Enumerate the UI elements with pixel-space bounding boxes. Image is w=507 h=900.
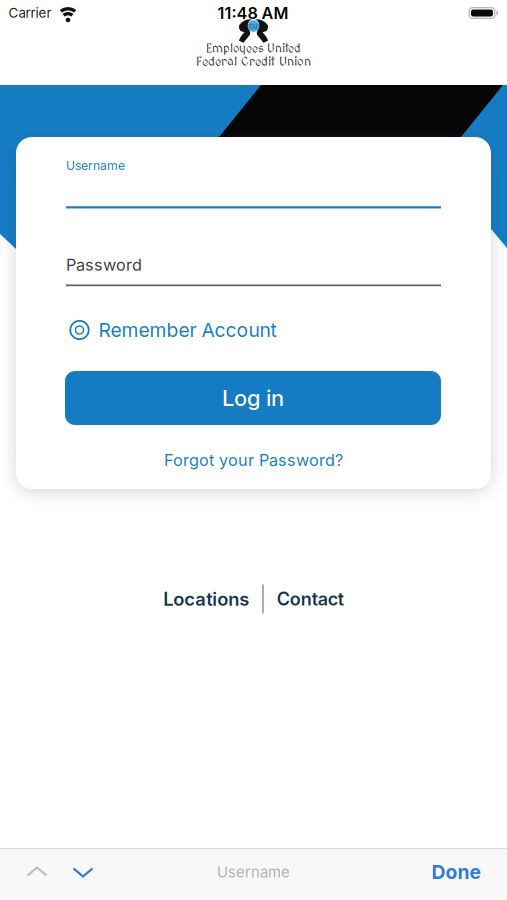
button[interactable]: Remember Account [69, 318, 276, 342]
staticText: 11:48 AM [217, 3, 288, 23]
button[interactable]: Locations [163, 588, 249, 610]
button[interactable]: Contact [277, 588, 344, 610]
button[interactable]: Done [431, 860, 480, 884]
staticText: Locations [163, 588, 249, 610]
button[interactable]: Forgot your Password? [164, 450, 343, 470]
staticText: Log in [222, 385, 284, 411]
button[interactable]: Next field [70, 863, 95, 881]
button[interactable]: Previous field [24, 863, 49, 881]
staticText: Contact [277, 588, 344, 610]
staticText: Federal Credit Union [196, 55, 311, 69]
staticText: cu [249, 21, 258, 31]
staticText: Username [217, 863, 290, 881]
staticText: Password [66, 255, 142, 275]
staticText: Employees United [206, 42, 301, 56]
staticText: Done [431, 860, 480, 884]
staticText: Remember Account [98, 318, 276, 342]
button[interactable]: Username [66, 158, 441, 209]
staticText: Username [66, 158, 125, 173]
staticText: Carrier [8, 5, 51, 21]
button[interactable]: Password [66, 255, 441, 286]
staticText: Forgot your Password? [164, 450, 343, 470]
button[interactable]: Log in [65, 371, 441, 425]
